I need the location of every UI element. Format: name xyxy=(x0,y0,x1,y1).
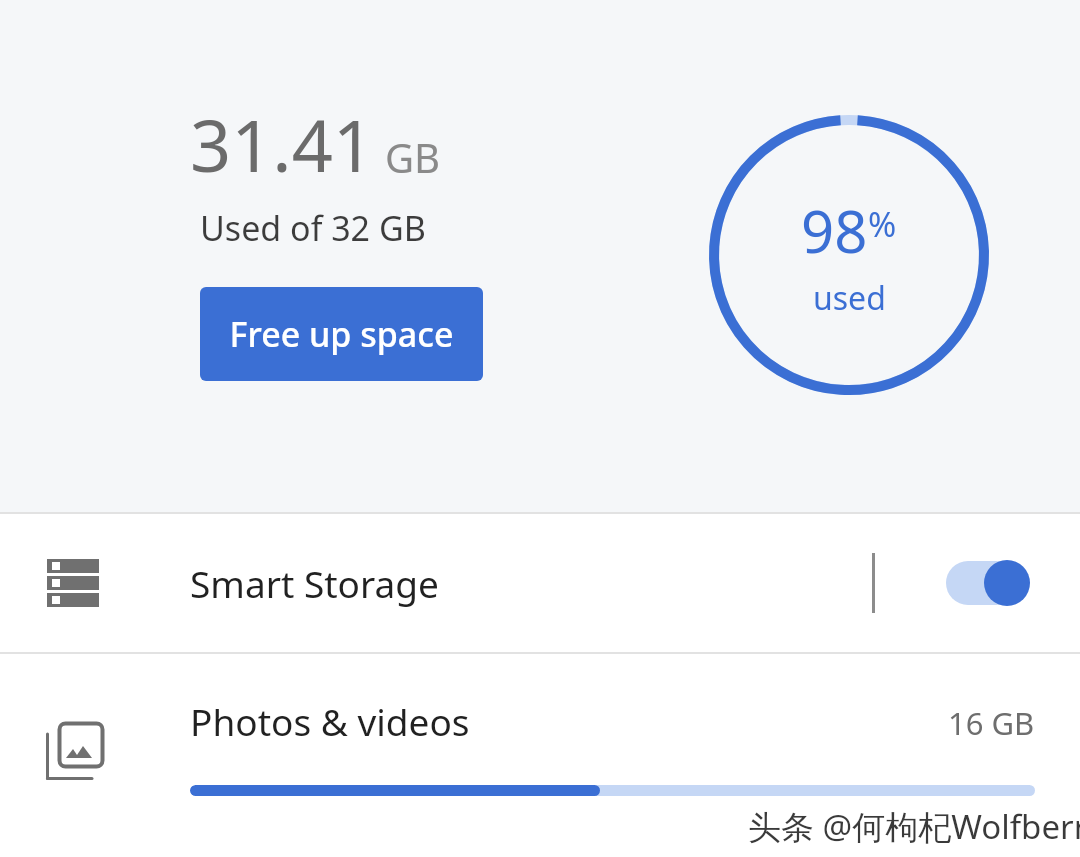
staticText: Photos & videos xyxy=(190,696,470,746)
button[interactable]: Free up space xyxy=(200,287,483,381)
staticText: Used of 32 GB xyxy=(200,205,426,251)
staticText: 98 xyxy=(801,191,868,270)
button[interactable]: Smart Storage toggle xyxy=(936,553,1040,613)
button[interactable]: Smart Storage xyxy=(0,514,1080,652)
staticText: Free up space xyxy=(229,311,454,357)
staticText: 16 GB xyxy=(948,702,1035,744)
staticText: % xyxy=(868,201,897,247)
staticText: Smart Storage xyxy=(190,558,439,608)
button[interactable]: Photos & videos xyxy=(0,654,1080,857)
staticText: GB xyxy=(385,130,441,184)
staticText: 头条 @何枸杞Wolfberry xyxy=(748,804,1080,849)
staticText: used xyxy=(813,276,886,320)
staticText: 31.41 xyxy=(190,95,375,193)
